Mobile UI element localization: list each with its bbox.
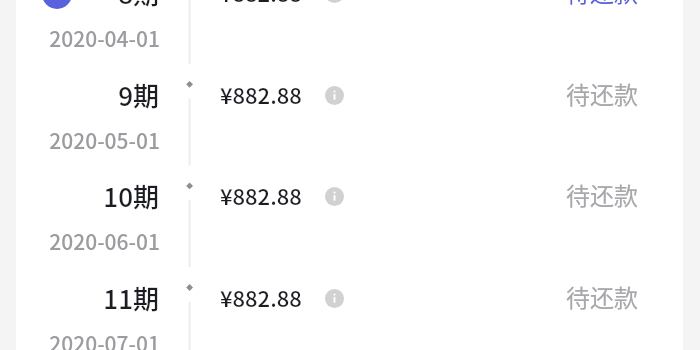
button[interactable]: Instalment details [325, 0, 344, 3]
staticText: 9期 [59, 76, 159, 114]
staticText: ¥882.88 [220, 78, 302, 110]
staticText: 待还款 [536, 177, 638, 212]
staticText: ¥882.88 [220, 0, 302, 8]
button[interactable]: 8期 [0, 0, 700, 55]
button[interactable]: 10期 [0, 156, 700, 258]
button[interactable]: Instalment details [325, 86, 344, 105]
staticText: 2020-04-01 [41, 23, 160, 53]
staticText: 2020-06-01 [41, 226, 160, 256]
button[interactable]: Instalment details [325, 289, 344, 308]
staticText: 待还款 [536, 76, 638, 111]
staticText: 2020-07-01 [41, 328, 160, 350]
button[interactable]: 9期 [0, 55, 700, 157]
staticText: 8期 [59, 0, 159, 12]
staticText: 11期 [59, 279, 159, 317]
staticText: ¥882.88 [220, 179, 302, 211]
staticText: 待还款 [536, 279, 638, 314]
button[interactable]: 11期 [0, 258, 700, 350]
staticText: ¥882.88 [220, 281, 302, 313]
staticText: 待还款 [536, 0, 638, 9]
staticText: 10期 [59, 177, 159, 215]
button[interactable]: Instalment details [325, 187, 344, 206]
staticText: 2020-05-01 [41, 125, 160, 155]
